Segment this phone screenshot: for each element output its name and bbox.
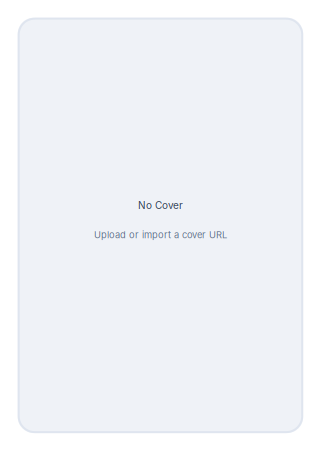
- button[interactable]: No Cover: [18, 18, 303, 433]
- staticText: Upload or import a cover URL: [94, 229, 227, 241]
- staticText: No Cover: [138, 199, 183, 211]
